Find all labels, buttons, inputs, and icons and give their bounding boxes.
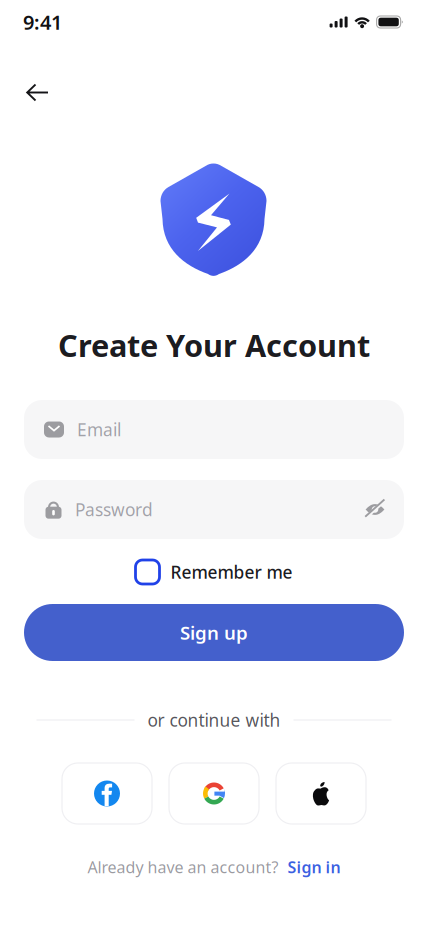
staticText: Create Your Account [58, 325, 370, 365]
staticText: Sign in [287, 856, 340, 878]
button[interactable]: Sign in [287, 856, 340, 878]
staticText: Sign up [180, 620, 248, 645]
staticText: Email [77, 418, 121, 441]
button[interactable]: Sign up [24, 604, 404, 661]
staticText: Already have an account? [87, 856, 278, 878]
staticText: Password [75, 498, 153, 521]
button[interactable]: Show password [360, 495, 390, 523]
staticText: Remember me [170, 560, 292, 583]
button[interactable]: Continue with Facebook [62, 763, 152, 824]
button[interactable]: Continue with Apple [276, 763, 366, 824]
staticText: or continue with [147, 708, 280, 731]
button[interactable]: Remember me [135, 556, 292, 588]
button[interactable]: Back [13, 70, 62, 115]
staticText: 9:41 [23, 9, 62, 35]
button[interactable]: Continue with Google [169, 763, 259, 824]
